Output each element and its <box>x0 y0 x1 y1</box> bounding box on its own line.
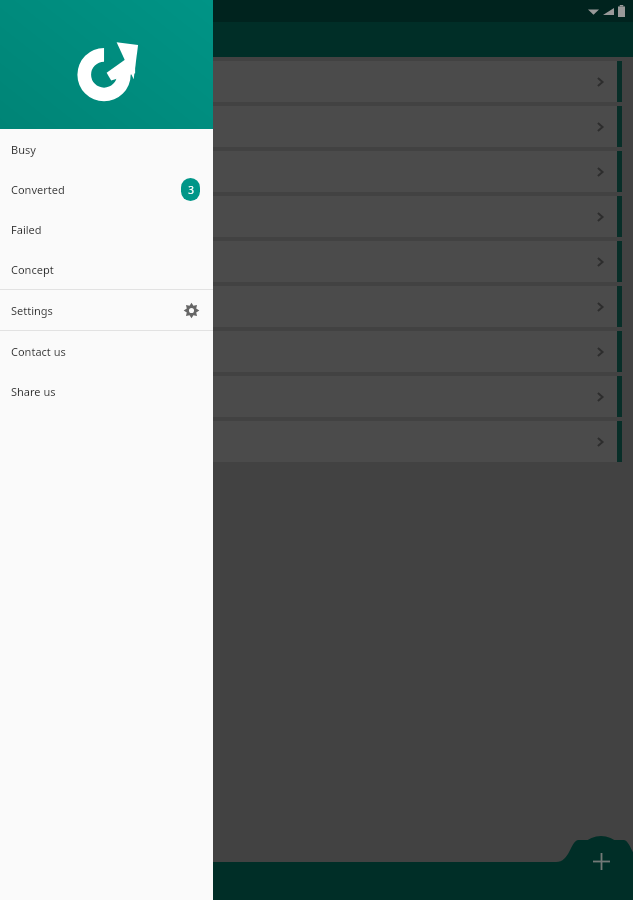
staticText: Converted <box>11 182 65 197</box>
other: Open item <box>593 255 607 269</box>
other: Open item <box>593 300 607 314</box>
button[interactable]: Open item <box>11 421 622 462</box>
button[interactable]: Converted <box>0 169 213 209</box>
other: Open item <box>593 435 607 449</box>
other: Open item <box>593 165 607 179</box>
staticText: Contact us <box>11 344 66 359</box>
button[interactable]: Open item <box>11 376 622 417</box>
other: Open item <box>593 390 607 404</box>
button[interactable]: Open item <box>11 61 622 102</box>
button[interactable]: Busy <box>0 129 213 169</box>
button[interactable]: Open item <box>11 286 622 327</box>
button[interactable]: Settings <box>0 290 213 330</box>
other: Open item <box>593 75 607 89</box>
button[interactable]: App logo <box>0 0 213 129</box>
other: Open item <box>593 210 607 224</box>
other: Settings <box>183 302 200 319</box>
staticText: Busy <box>11 142 36 157</box>
button[interactable]: Failed <box>0 209 213 249</box>
button[interactable]: Open item <box>11 106 622 147</box>
button[interactable]: Concept <box>0 249 213 289</box>
staticText: Failed <box>11 222 42 237</box>
button[interactable]: Open item <box>11 196 622 237</box>
button[interactable]: Share us <box>0 371 213 411</box>
staticText: 3 <box>188 183 194 197</box>
button[interactable]: Open item <box>11 151 622 192</box>
button[interactable]: Open item <box>11 331 622 372</box>
staticText: Settings <box>11 303 53 318</box>
staticText: Share us <box>11 384 56 399</box>
button[interactable]: Add <box>576 836 626 886</box>
staticText: Concept <box>11 262 54 277</box>
button[interactable]: Contact us <box>0 331 213 371</box>
other: Open item <box>593 345 607 359</box>
button[interactable]: Open item <box>11 241 622 282</box>
other: Open item <box>593 120 607 134</box>
